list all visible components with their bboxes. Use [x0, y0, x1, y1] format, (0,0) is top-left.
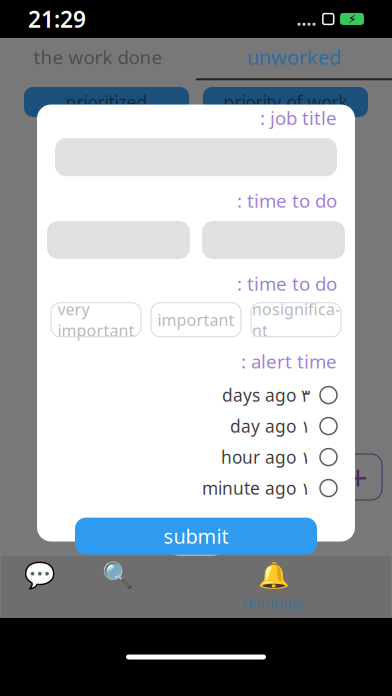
button[interactable]: important: [151, 303, 241, 337]
staticText: : job title: [260, 105, 337, 130]
button[interactable]: hour ago ١: [55, 442, 337, 473]
staticText: prioritized: [65, 90, 147, 113]
staticText: the work done: [33, 45, 162, 69]
staticText: reminder: [242, 593, 306, 613]
staticText: unworked: [247, 44, 341, 70]
staticText: nosignificant: [252, 298, 340, 341]
staticText: 💬: [24, 561, 56, 590]
staticText: important: [157, 309, 234, 330]
button[interactable]: nosignificant: [251, 303, 341, 337]
staticText: : alert time: [241, 349, 337, 374]
button[interactable]: the work done: [0, 38, 196, 78]
staticText: days ago ٣: [222, 384, 310, 407]
staticText: +: [348, 454, 368, 500]
staticText: ....: [296, 7, 316, 30]
staticText: minute ago ١: [202, 477, 310, 500]
staticText: 🔔: [258, 561, 290, 590]
button[interactable]: 🔔: [235, 559, 313, 615]
staticText: : time to do: [237, 188, 337, 213]
staticText: 21:29: [28, 4, 86, 34]
staticText: very important: [57, 298, 134, 341]
button[interactable]: day ago ١: [55, 411, 337, 442]
button[interactable]: 🔍: [79, 559, 157, 615]
staticText: submit: [163, 523, 228, 549]
staticText: : time to do: [237, 271, 337, 296]
button[interactable]: priority of work: [203, 87, 368, 117]
button[interactable]: Voice input: [167, 504, 225, 556]
button[interactable]: Add: [334, 454, 382, 500]
staticText: 🎙: [177, 513, 214, 547]
button[interactable]: days ago ٣: [55, 380, 337, 411]
button[interactable]: unworked: [196, 38, 392, 78]
staticText: priority of work: [223, 90, 347, 113]
staticText: ⚡︎: [348, 12, 356, 26]
staticText: day ago ١: [230, 415, 310, 438]
staticText: hour ago ١: [221, 446, 310, 469]
button[interactable]: very important: [51, 303, 141, 337]
button[interactable]: 💬: [1, 559, 79, 615]
staticText: 🔍: [102, 561, 134, 590]
button[interactable]: minute ago ١: [55, 473, 337, 504]
button[interactable]: prioritized: [24, 87, 189, 117]
button[interactable]: submit: [75, 518, 317, 555]
